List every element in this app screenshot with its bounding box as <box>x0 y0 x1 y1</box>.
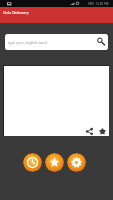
button[interactable]: History <box>23 153 42 172</box>
button[interactable]: Search <box>93 36 105 48</box>
staticText: type your english word <box>8 40 47 45</box>
button[interactable]: Settings <box>67 153 86 172</box>
staticText: 98% 12:30 PM <box>88 2 109 6</box>
button[interactable]: type your english word <box>5 34 108 50</box>
button[interactable]: Favourites <box>45 153 64 172</box>
staticText: Urdu Dictionary <box>3 10 29 15</box>
button[interactable]: Add to favourites <box>99 128 106 135</box>
button[interactable]: Share <box>86 128 93 135</box>
